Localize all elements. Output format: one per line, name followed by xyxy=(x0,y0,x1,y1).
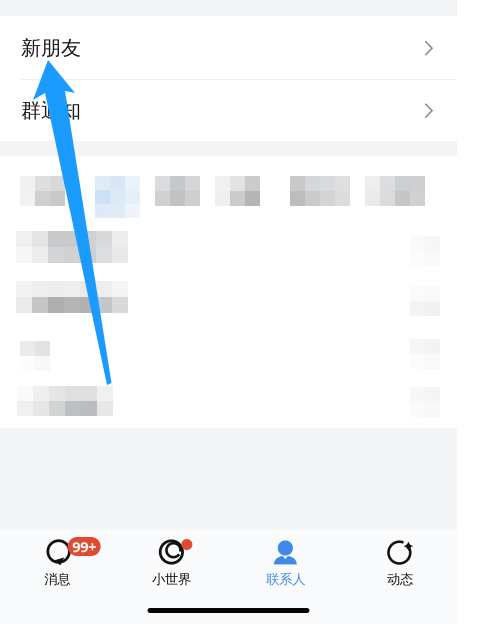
staticText: 动态 xyxy=(387,571,413,587)
staticText: 消息 xyxy=(44,571,70,587)
button[interactable]: 新朋友 xyxy=(0,16,457,80)
button[interactable]: 99+ xyxy=(0,529,114,595)
staticText: 联系人 xyxy=(266,571,305,587)
staticText: 群通知 xyxy=(21,98,81,123)
button[interactable]: 动态 xyxy=(343,529,457,595)
button[interactable]: 群通知 xyxy=(0,80,457,141)
staticText: 小世界 xyxy=(152,571,191,587)
staticText: 新朋友 xyxy=(21,36,81,60)
staticText: 99+ xyxy=(72,537,96,556)
button[interactable]: 联系人 xyxy=(228,529,343,595)
button[interactable]: 小世界 xyxy=(114,529,228,595)
